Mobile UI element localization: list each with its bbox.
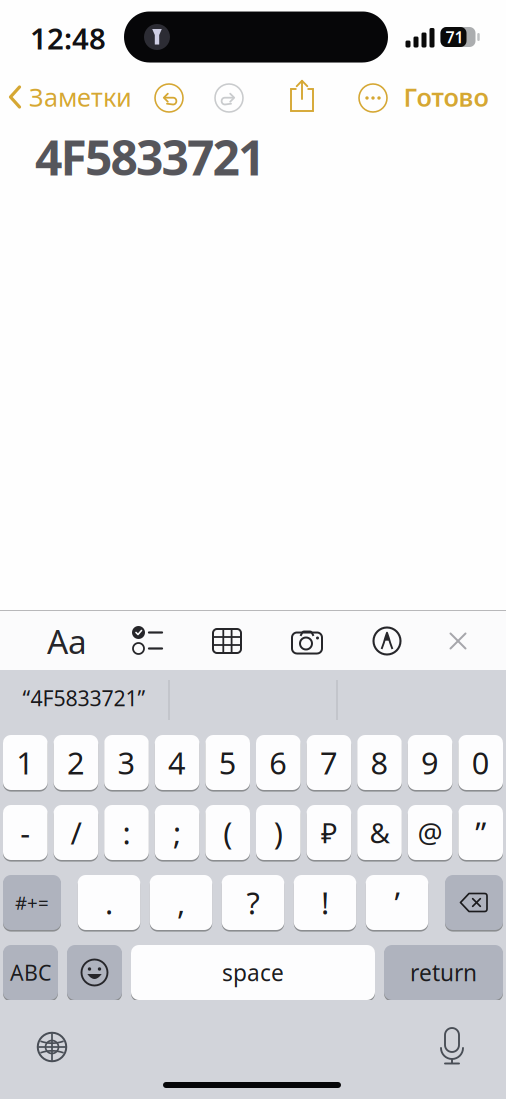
staticText: ; [173,812,181,853]
staticText: , [177,882,185,923]
staticText: 0 [472,742,490,783]
button[interactable]: 3 [104,735,149,790]
button[interactable]: Format [47,619,87,663]
staticText: ABC [10,958,51,987]
staticText: ₽ [321,814,337,851]
staticText: ’ [394,882,399,923]
button[interactable]: ” [458,805,503,860]
button[interactable]: Close [449,632,467,650]
staticText: ) [274,812,283,853]
button[interactable]: : [104,805,149,860]
staticText: space [222,957,284,987]
button[interactable]: 1 [3,735,48,790]
button[interactable]: Next keyboard [37,1032,67,1062]
button[interactable]: Checklist [132,626,162,654]
button[interactable]: Delete [445,875,503,930]
staticText: Готово [403,80,488,114]
staticText: 7 [320,742,338,783]
staticText: 6 [269,742,287,783]
button[interactable]: Заметки [8,80,132,114]
button[interactable]: Camera [291,627,323,654]
staticText: 5 [219,742,237,783]
staticText: “4F5833721” [22,684,145,712]
button[interactable]: 5 [205,735,250,790]
staticText: 71 [445,26,463,48]
button[interactable]: Redo [214,83,244,113]
staticText: / [70,812,81,853]
staticText: Заметки [29,80,132,114]
button[interactable]: ₽ [307,805,351,860]
staticText: : [122,812,130,853]
staticText: ! [321,882,329,923]
button[interactable]: Emoji [67,945,122,1000]
button[interactable]: 2 [54,735,98,790]
staticText: - [20,812,30,853]
staticText: 2 [67,742,85,783]
button[interactable]: 6 [256,735,301,790]
button[interactable]: ( [205,805,250,860]
button[interactable]: 9 [408,735,452,790]
button[interactable]: , [150,875,212,930]
button[interactable]: ? [222,875,284,930]
button[interactable]: “4F5833721” [22,684,145,712]
button[interactable]: @ [408,805,452,860]
staticText: . [105,882,113,923]
button[interactable]: #+= [3,875,61,930]
staticText: #+= [15,890,49,915]
staticText: 4 [168,742,186,783]
staticText: 3 [117,742,135,783]
staticText: Aa [47,619,87,663]
button[interactable]: - [3,805,48,860]
staticText: @ [418,814,443,851]
button[interactable]: Undo [154,83,184,113]
button[interactable]: Dictate [438,1027,466,1065]
staticText: 1 [16,742,34,783]
button[interactable]: Table [213,629,241,653]
staticText: 12:48 [30,18,106,57]
staticText: ” [475,812,486,853]
staticText: & [369,814,389,851]
staticText: return [410,957,477,987]
button[interactable]: space [131,945,375,1000]
staticText: 9 [421,742,439,783]
button[interactable]: / [54,805,98,860]
button[interactable]: 8 [357,735,402,790]
button[interactable]: Share [288,79,316,113]
button[interactable]: . [78,875,140,930]
staticText: 8 [370,742,388,783]
button[interactable]: 4 [155,735,199,790]
button[interactable]: Готово [403,80,488,114]
button[interactable]: 7 [307,735,351,790]
button[interactable]: return [384,945,503,1000]
button[interactable]: ! [294,875,356,930]
button[interactable]: More [358,83,388,113]
button[interactable]: & [357,805,402,860]
button[interactable]: ) [256,805,301,860]
staticText: ( [223,812,232,853]
button[interactable]: ; [155,805,199,860]
button[interactable]: ’ [366,875,428,930]
button[interactable]: 0 [458,735,503,790]
staticText: 4F5833721 [35,125,265,189]
button[interactable]: ABC [3,945,58,1000]
staticText: ? [246,882,259,923]
button[interactable]: Markup [373,627,400,654]
